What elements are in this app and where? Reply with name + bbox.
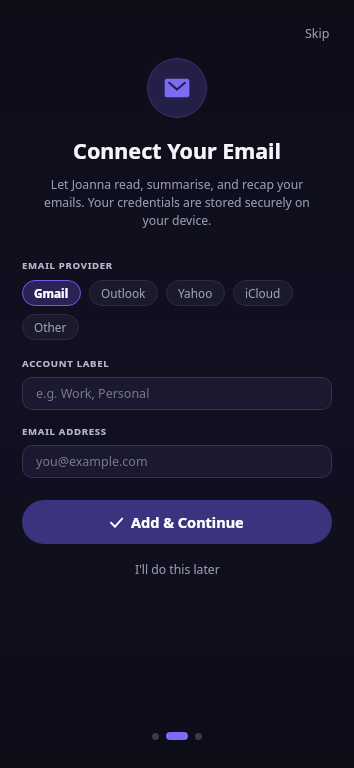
button[interactable]: you@example.com <box>22 445 332 478</box>
button[interactable]: Skip <box>299 22 336 45</box>
button[interactable]: Other <box>22 314 79 340</box>
staticText: e.g. Work, Personal <box>36 385 150 402</box>
button[interactable]: Outlook <box>89 280 158 306</box>
staticText: you@example.com <box>36 453 148 470</box>
staticText: Skip <box>305 25 330 42</box>
button[interactable]: I'll do this later <box>127 557 228 582</box>
staticText: Let Joanna read, summarise, and recap yo… <box>40 176 314 229</box>
staticText: ACCOUNT LABEL <box>22 357 110 370</box>
button[interactable]: e.g. Work, Personal <box>22 377 332 410</box>
staticText: EMAIL PROVIDER <box>22 259 113 272</box>
button[interactable]: Gmail <box>22 280 81 306</box>
staticText: Yahoo <box>178 285 213 301</box>
staticText: Outlook <box>101 285 146 301</box>
button[interactable]: Add & Continue <box>22 500 332 544</box>
staticText: Add & Continue <box>131 512 244 532</box>
staticText: Other <box>34 319 67 335</box>
staticText: I'll do this later <box>135 561 220 578</box>
staticText: EMAIL ADDRESS <box>22 425 107 438</box>
staticText: Gmail <box>34 285 69 301</box>
staticText: Connect Your Email <box>73 136 281 165</box>
button[interactable]: iCloud <box>233 280 293 306</box>
staticText: iCloud <box>245 285 281 301</box>
button[interactable]: Yahoo <box>166 280 225 306</box>
